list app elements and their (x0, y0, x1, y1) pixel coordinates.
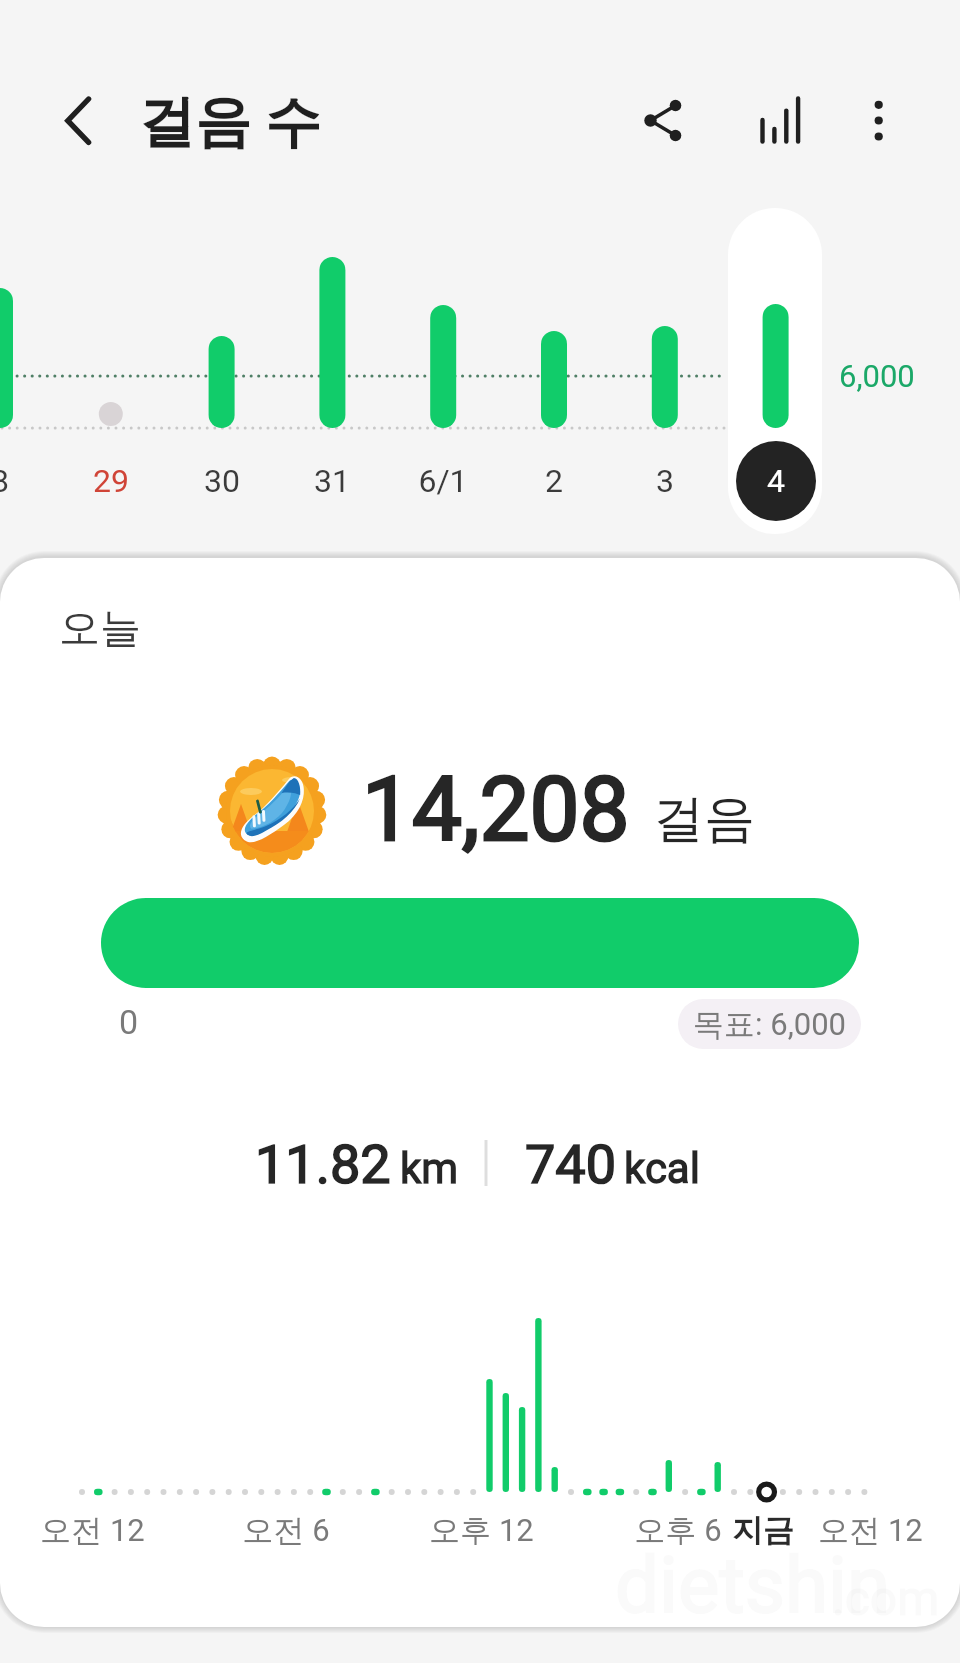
staticText: 지금 (732, 1511, 794, 1550)
button[interactable]: Share (626, 84, 702, 160)
staticText: 6/1 (418, 462, 468, 500)
staticText: 오후 12 (429, 1511, 534, 1550)
staticText: 8 (0, 462, 9, 500)
staticText: 740 (525, 1133, 617, 1196)
staticText: 30 (204, 462, 240, 500)
staticText: 3 (656, 462, 674, 500)
staticText: 4 (767, 462, 785, 500)
staticText: 오전 12 (40, 1511, 145, 1550)
button[interactable]: More options (842, 84, 918, 160)
staticText: 오전 12 (818, 1511, 923, 1550)
staticText: 목표: 6,000 (693, 1005, 846, 1044)
staticText: 오전 6 (242, 1511, 330, 1550)
staticText: 14,208 (362, 757, 630, 861)
staticText: kcal (624, 1144, 700, 1193)
staticText: 걸음 (653, 787, 755, 851)
staticText: dietshin (615, 1540, 891, 1631)
button[interactable]: Statistics (742, 84, 818, 160)
staticText: 0 (119, 1002, 139, 1042)
staticText: km (400, 1144, 459, 1193)
staticText: 29 (93, 462, 129, 500)
staticText: 오늘 (59, 603, 141, 655)
staticText: 걸음 수 (139, 87, 321, 158)
staticText: 11.82 (255, 1133, 391, 1196)
staticText: 6,000 (839, 358, 915, 394)
staticText: 오후 6 (634, 1511, 722, 1550)
staticText: .com (832, 1570, 940, 1626)
button[interactable]: Back (40, 84, 116, 160)
staticText: 2 (545, 462, 563, 500)
staticText: 31 (314, 462, 350, 500)
